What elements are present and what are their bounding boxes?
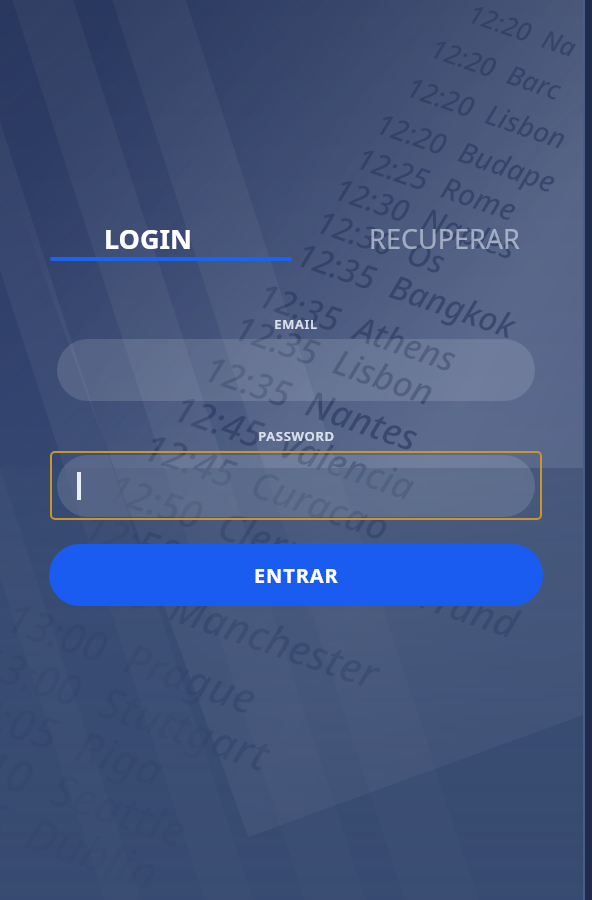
button[interactable]: LOGIN — [0, 213, 296, 263]
staticText: 13:00 Stuttgart — [0, 630, 278, 785]
button[interactable]: Email input — [57, 339, 535, 401]
staticText: 12:25 Rome — [351, 137, 522, 230]
staticText: 12:35 Athens — [252, 271, 462, 382]
staticText: 12:20 Lisbon — [402, 67, 572, 157]
staticText: 12:35 Nantes — [198, 343, 425, 462]
staticText: 12:30 Naples — [329, 167, 522, 269]
staticText: LOGIN — [104, 220, 192, 257]
staticText: 12:35 Lisbon — [228, 303, 440, 416]
staticText: 12:20 Budape — [372, 103, 561, 201]
staticText: 12:20 Na — [464, 0, 582, 65]
button[interactable]: RECUPERAR — [296, 213, 592, 263]
staticText: RECUPERAR — [369, 220, 520, 257]
staticText: 12:50 Sofia — [77, 497, 293, 617]
staticText: 12:20 Barc — [426, 29, 567, 108]
staticText: 12:45 Valencia — [168, 381, 422, 511]
staticText: EMAIL — [274, 315, 318, 333]
staticText: 13:00 Prague — [0, 588, 265, 727]
staticText: 12:30 Os — [311, 199, 452, 284]
staticText: 12:55 Manchester — [47, 537, 387, 701]
button[interactable]: Password input — [50, 451, 542, 520]
staticText: 12:35 Bangkok — [291, 231, 522, 348]
staticText: PASSWORD — [258, 427, 335, 445]
staticText: 12:45 Curacao — [137, 419, 396, 552]
button[interactable]: ENTRAR — [49, 544, 543, 606]
staticText: 12:50 Clermont-Ferrand — [101, 459, 526, 650]
staticText: ENTRAR — [254, 562, 339, 589]
